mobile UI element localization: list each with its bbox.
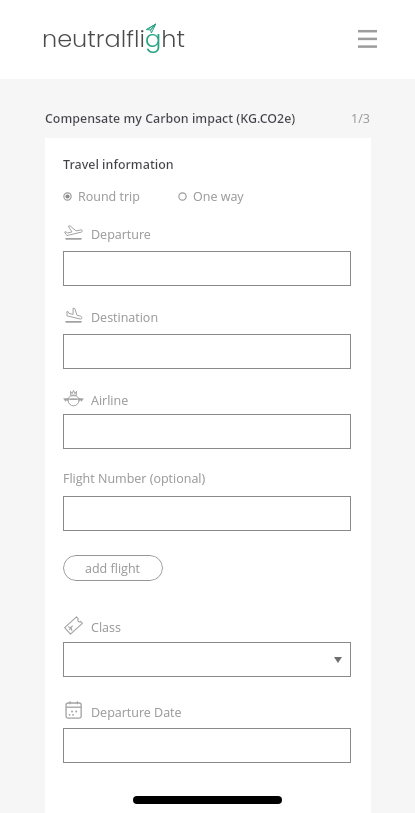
button[interactable]: One way — [178, 188, 244, 205]
button[interactable]: Select travel class — [63, 642, 351, 677]
button[interactable] — [63, 251, 351, 286]
staticText: 1/3 — [351, 110, 370, 127]
button[interactable]: add flight — [63, 555, 163, 581]
button[interactable]: Round trip — [63, 188, 140, 205]
button[interactable]: Open menu — [348, 19, 386, 57]
button[interactable]: neutralflight home — [42, 22, 185, 56]
staticText: Class — [91, 619, 121, 636]
staticText: Compensate my Carbon impact (KG.CO2e) — [45, 110, 296, 127]
staticText: Round trip — [78, 188, 140, 205]
staticText: Departure Date — [91, 704, 182, 721]
staticText: neutralflight — [42, 22, 185, 56]
staticText: Destination — [91, 309, 159, 326]
staticText: Airline — [91, 392, 129, 409]
staticText: Departure — [91, 226, 151, 243]
staticText: add flight — [85, 560, 141, 577]
button[interactable] — [63, 414, 351, 449]
staticText: Flight Number (optional) — [63, 470, 206, 487]
button[interactable] — [63, 728, 351, 763]
staticText: Travel information — [63, 156, 174, 173]
button[interactable] — [63, 496, 351, 531]
button[interactable] — [63, 334, 351, 369]
staticText: One way — [193, 188, 244, 205]
